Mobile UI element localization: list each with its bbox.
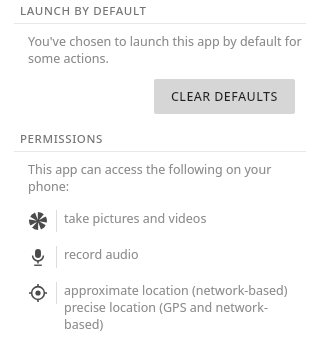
staticText: LAUNCH BY DEFAULT [20,3,147,19]
button[interactable]: CLEAR DEFAULTS [154,79,295,114]
button[interactable]: Microphone [0,246,320,268]
button[interactable]: Camera [0,210,320,232]
staticText: CLEAR DEFAULTS [171,88,278,105]
other: Location [22,282,54,304]
staticText: You've chosen to launch this app by defa… [28,33,302,67]
staticText: approximate location (network-based) pre… [64,282,288,333]
staticText: record audio [64,246,139,263]
button[interactable]: Location [0,282,320,333]
staticText: PERMISSIONS [20,131,103,147]
staticText: This app can access the following on you… [28,161,272,195]
other: Camera [22,210,54,232]
other: Microphone [22,246,54,268]
staticText: take pictures and videos [64,210,207,227]
